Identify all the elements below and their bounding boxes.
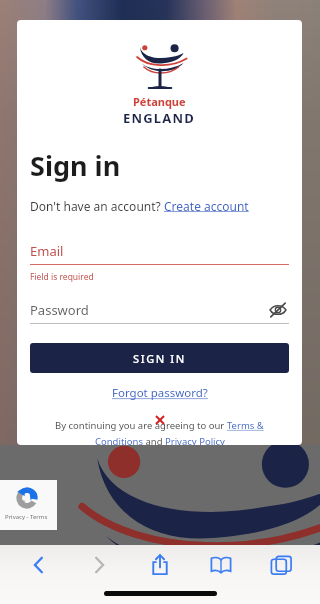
staticText: Create account <box>164 198 249 214</box>
staticText: Privacy - Terms <box>5 513 48 521</box>
button[interactable]: Forward <box>77 546 121 584</box>
button[interactable]: SIGN IN <box>30 343 289 373</box>
button[interactable]: Forgot password? <box>112 385 208 401</box>
button[interactable]: Back <box>17 546 61 584</box>
button[interactable]: Email <box>30 238 289 264</box>
button[interactable]: Conditions <box>95 435 143 445</box>
button[interactable]: Show password <box>267 299 289 321</box>
button[interactable]: Share <box>138 546 182 584</box>
staticText: Pétanque <box>133 94 186 109</box>
button[interactable]: Bookmarks <box>199 546 243 584</box>
staticText: Sign in <box>30 147 121 184</box>
staticText: Don't have an account? <box>30 198 164 214</box>
button[interactable]: Privacy Policy <box>165 435 225 445</box>
staticText: Field is required <box>30 271 94 283</box>
button[interactable]: Tabs <box>259 546 303 584</box>
button[interactable]: Terms & <box>227 419 264 432</box>
staticText: Terms & <box>227 419 264 432</box>
button[interactable]: Password <box>30 297 289 323</box>
staticText: SIGN IN <box>133 351 186 366</box>
staticText: and <box>143 435 165 445</box>
staticText: Conditions <box>95 435 143 445</box>
button[interactable]: Privacy - Terms <box>0 480 57 530</box>
staticText: Forgot password? <box>112 385 208 401</box>
button[interactable]: Create account <box>164 198 249 214</box>
staticText: Password <box>30 301 267 319</box>
staticText: ENGLAND <box>123 109 196 127</box>
staticText: By continuing you are agreeing to our <box>55 419 227 432</box>
staticText: Privacy Policy <box>165 435 225 445</box>
staticText: Email <box>30 242 64 260</box>
